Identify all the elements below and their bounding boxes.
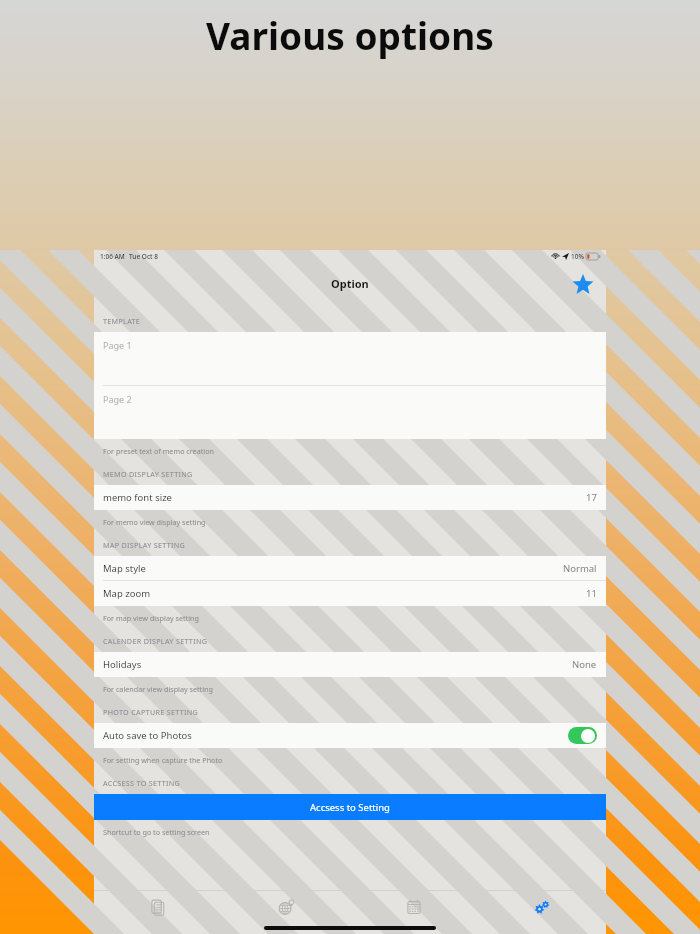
- staticText: Option: [331, 276, 369, 291]
- staticText: For setting when capture the Photo: [103, 755, 223, 765]
- button[interactable]: Page 1: [94, 332, 606, 386]
- button[interactable]: Accsess to Setting: [94, 794, 606, 820]
- staticText: Accsess to Setting: [310, 801, 390, 814]
- staticText: TEMPLATE: [103, 316, 141, 326]
- staticText: 1:06 AM: [100, 252, 125, 261]
- button[interactable]: Holidays: [94, 652, 606, 677]
- staticText: Various options: [206, 10, 494, 60]
- button[interactable]: Calendar: [350, 891, 478, 922]
- staticText: 17: [586, 491, 597, 504]
- button[interactable]: Map: [222, 891, 350, 922]
- staticText: Normal: [563, 562, 597, 575]
- button[interactable]: Map zoom: [94, 581, 606, 606]
- staticText: Shortcut to go to setting screen: [103, 827, 210, 837]
- staticText: PHOTO CAPTURE SETTING: [103, 707, 198, 717]
- button[interactable]: Auto save to Photos: [94, 723, 606, 748]
- button[interactable]: Map style: [94, 556, 606, 581]
- staticText: 10%: [571, 252, 584, 261]
- staticText: 11: [586, 587, 597, 600]
- staticText: memo font size: [103, 491, 172, 504]
- staticText: CALENDER DISPLAY SETTING: [103, 636, 208, 646]
- staticText: MEMO DISPLAY SETTING: [103, 469, 193, 479]
- button[interactable]: Settings: [478, 891, 606, 922]
- button[interactable]: Favorite: [570, 272, 596, 298]
- button[interactable]: Memo: [94, 891, 222, 922]
- staticText: For map view display setting: [103, 613, 199, 623]
- button[interactable]: memo font size: [94, 485, 606, 510]
- staticText: Auto save to Photos: [103, 729, 192, 742]
- staticText: Tue Oct 8: [129, 252, 159, 261]
- staticText: None: [572, 658, 597, 671]
- staticText: Page 1: [103, 339, 132, 351]
- staticText: Page 2: [103, 393, 132, 405]
- staticText: ACCSESS TO SETTING: [103, 778, 181, 788]
- staticText: Holidays: [103, 658, 142, 671]
- staticText: Map zoom: [103, 587, 151, 600]
- staticText: For calendar view display setting: [103, 684, 213, 694]
- staticText: Map style: [103, 562, 146, 575]
- staticText: For memo view display setting: [103, 517, 206, 527]
- staticText: MAP DISPLAY SETTING: [103, 540, 186, 550]
- staticText: For preset text of memo creation: [103, 446, 214, 456]
